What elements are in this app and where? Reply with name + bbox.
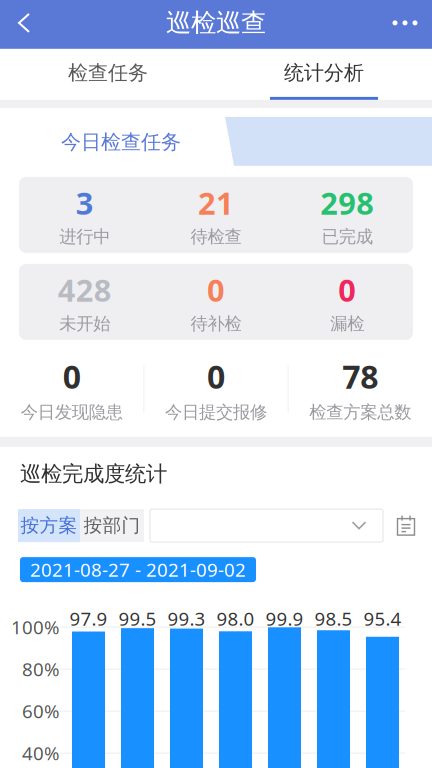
staticText: 78 [342, 355, 378, 397]
staticText: 98.0 [216, 606, 254, 631]
button[interactable]: 428 [19, 264, 150, 340]
staticText: 95.4 [363, 606, 401, 631]
staticText: 298 [320, 182, 374, 223]
staticText: 97.9 [69, 606, 107, 631]
staticText: 0 [207, 355, 225, 397]
staticText: 按部门 [83, 514, 140, 537]
staticText: 今日发现隐患 [21, 401, 123, 423]
button[interactable]: 2021-08-27 - 2021-09-02 [20, 557, 256, 582]
staticText: 巡检完成度统计 [20, 461, 167, 487]
button[interactable]: 78 [289, 361, 432, 417]
staticText: 80% [22, 657, 60, 681]
staticText: 待补检 [190, 313, 241, 334]
staticText: 0 [338, 269, 356, 310]
button[interactable]: 按方案 [18, 509, 80, 542]
button[interactable]: 0 [144, 361, 288, 417]
staticText: 99.3 [167, 606, 205, 631]
button[interactable]: 0 [0, 361, 143, 417]
button[interactable]: 检查任务 [0, 49, 216, 100]
button[interactable]: 298 [282, 177, 413, 253]
staticText: 检查任务 [68, 61, 148, 85]
staticText: 99.5 [118, 606, 156, 631]
button[interactable]: Report list [389, 509, 423, 542]
staticText: 428 [58, 269, 112, 310]
staticText: 待检查 [190, 226, 241, 247]
staticText: 今日提交报修 [165, 401, 267, 423]
button[interactable]: 统计分析 [216, 49, 432, 100]
staticText: 98.5 [314, 606, 352, 631]
button[interactable]: 按部门 [80, 509, 144, 542]
staticText: 0 [207, 269, 225, 310]
button[interactable]: 21 [150, 177, 282, 253]
staticText: 2021-08-27 - 2021-09-02 [30, 557, 246, 582]
button[interactable] [150, 509, 383, 542]
staticText: 按方案 [20, 514, 77, 537]
button[interactable]: More options [378, 0, 432, 49]
button[interactable]: 0 [282, 264, 413, 340]
staticText: 今日检查任务 [61, 130, 181, 154]
staticText: 巡检巡查 [166, 7, 266, 38]
staticText: 已完成 [322, 226, 373, 247]
staticText: 未开始 [59, 313, 110, 334]
staticText: 统计分析 [284, 61, 364, 85]
staticText: 99.9 [265, 606, 303, 631]
staticText: 0 [63, 355, 81, 397]
staticText: 3 [76, 182, 94, 223]
button[interactable]: Back [0, 0, 48, 49]
staticText: 漏检 [330, 313, 364, 334]
staticText: 60% [22, 699, 60, 723]
button[interactable]: 3 [19, 177, 150, 253]
staticText: 进行中 [59, 226, 110, 247]
staticText: 检查方案总数 [309, 401, 411, 423]
staticText: 21 [198, 182, 234, 223]
staticText: 40% [22, 741, 60, 765]
staticText: 100% [11, 615, 60, 639]
button[interactable]: 0 [150, 264, 282, 340]
